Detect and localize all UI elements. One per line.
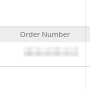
button[interactable]: Order Number [0,26,90,42]
staticText: Order Number [20,29,70,39]
other: Order number, hidden [22,46,80,57]
button[interactable]: Order number, hidden [0,45,90,58]
